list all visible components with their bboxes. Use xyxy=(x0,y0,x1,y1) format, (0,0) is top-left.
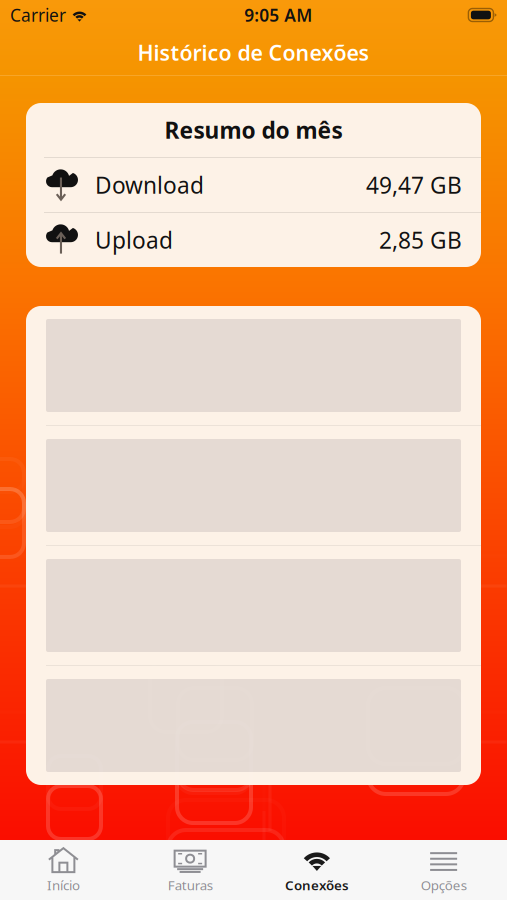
staticText: Upload xyxy=(95,225,173,255)
button[interactable]: Conexões xyxy=(253,840,380,900)
staticText: Faturas xyxy=(168,876,213,894)
staticText: Resumo do mês xyxy=(164,115,342,145)
staticText: Opções xyxy=(421,876,467,894)
staticText: Histórico de Conexões xyxy=(137,38,369,67)
button[interactable]: Faturas xyxy=(127,840,254,900)
staticText: Conexões xyxy=(285,876,349,894)
staticText: Início xyxy=(47,876,80,894)
staticText: Download xyxy=(95,170,204,200)
staticText: 49,47 GB xyxy=(366,170,462,200)
staticText: 9:05 AM xyxy=(244,3,312,26)
staticText: 2,85 GB xyxy=(379,225,462,255)
staticText: Carrier xyxy=(10,3,66,26)
button[interactable]: Início xyxy=(0,840,127,900)
button[interactable]: Opções xyxy=(380,840,507,900)
